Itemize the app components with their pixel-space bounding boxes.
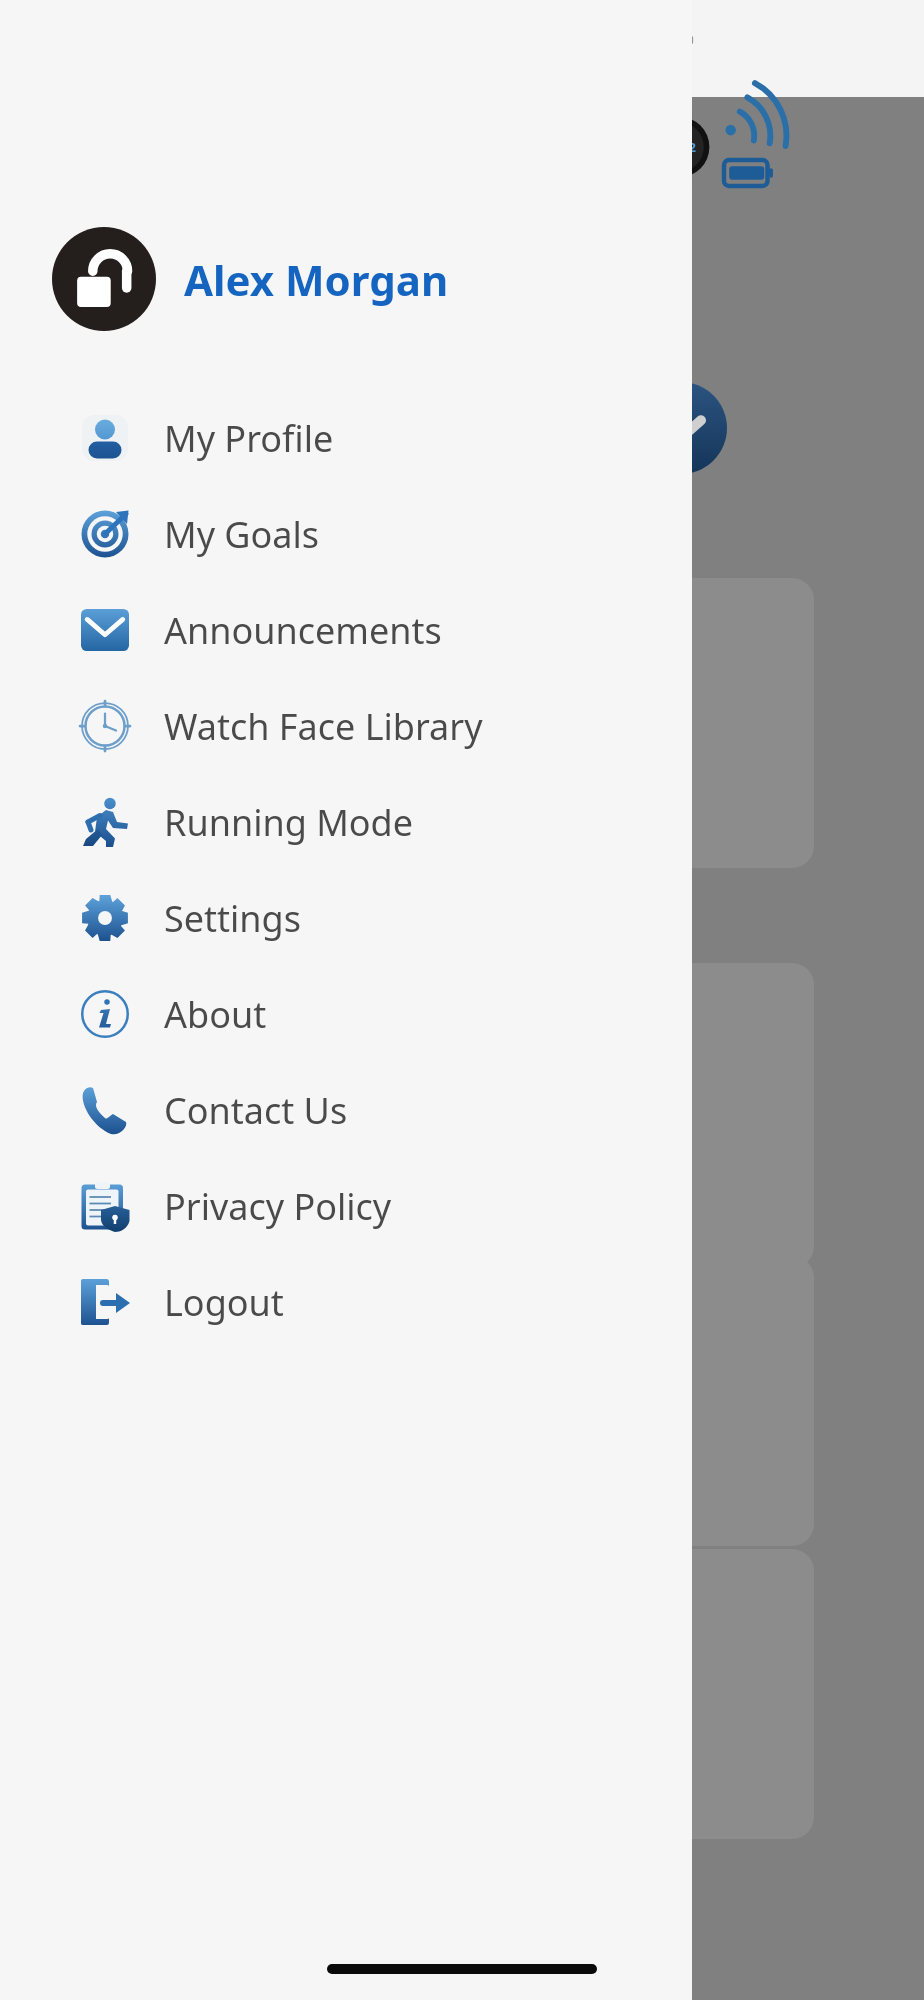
button[interactable]: Privacy Policy [0, 1158, 692, 1254]
button[interactable]: 00 [582, 578, 814, 868]
staticText: My Goals [164, 510, 320, 559]
staticText: 32 [681, 138, 696, 156]
button[interactable]: Contact Us [0, 1062, 692, 1158]
staticText: Settings [164, 894, 301, 943]
button[interactable]: Watch Face Library [0, 678, 692, 774]
button[interactable]: Running Mode [0, 774, 692, 870]
staticText: Announcements [164, 606, 442, 655]
button[interactable] [582, 1549, 814, 1839]
button[interactable]: My Profile [0, 390, 692, 486]
staticText: About [164, 990, 267, 1039]
staticText: Running Mode [164, 798, 414, 847]
button[interactable]: Logout [0, 1254, 692, 1350]
button[interactable]: oz [582, 963, 814, 1268]
button[interactable]: Expand [635, 382, 727, 474]
button[interactable]: Alex Morgan [0, 225, 692, 333]
staticText: My Profile [164, 414, 334, 463]
button[interactable]: 0 [582, 1256, 814, 1546]
button[interactable]: Settings [0, 870, 692, 966]
button[interactable]: Announcements [0, 582, 692, 678]
staticText: Privacy Policy [164, 1182, 392, 1231]
staticText: Alex Morgan [184, 251, 449, 308]
button[interactable]: Menu [600, 148, 696, 220]
staticText: Watch Face Library [164, 702, 483, 751]
staticText: Contact Us [164, 1086, 348, 1135]
button[interactable]: About [0, 966, 692, 1062]
button[interactable]: My Goals [0, 486, 692, 582]
staticText: Logout [164, 1278, 284, 1327]
